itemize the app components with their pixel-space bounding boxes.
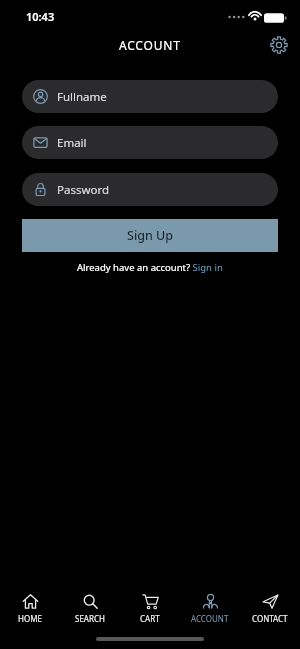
- staticText: SEARCH: [75, 613, 105, 624]
- staticText: 10:43: [26, 9, 55, 24]
- staticText: Email: [57, 135, 87, 151]
- button[interactable]: HOME: [0, 593, 60, 624]
- staticText: HOME: [18, 613, 42, 624]
- staticText: ACCOUNT: [191, 613, 229, 624]
- staticText: Fullname: [57, 89, 107, 105]
- button[interactable]: Sign Up: [22, 219, 278, 252]
- staticText: CART: [140, 613, 160, 624]
- button[interactable]: Fullname: [22, 80, 278, 113]
- button[interactable]: Password: [22, 173, 278, 206]
- button[interactable]: Already have an account? Sign in: [0, 261, 300, 274]
- staticText: Sign Up: [127, 227, 174, 244]
- button[interactable]: CART: [120, 593, 180, 624]
- button[interactable]: CONTACT: [240, 593, 300, 624]
- button[interactable]: SEARCH: [60, 593, 120, 624]
- staticText: Password: [57, 182, 110, 198]
- button[interactable]: Email: [22, 126, 278, 159]
- staticText: CONTACT: [252, 613, 288, 624]
- button[interactable]: [270, 36, 288, 54]
- button[interactable]: ACCOUNT: [180, 593, 240, 624]
- staticText: ACCOUNT: [119, 37, 181, 53]
- staticText: Already have an account? Sign in: [77, 261, 223, 274]
